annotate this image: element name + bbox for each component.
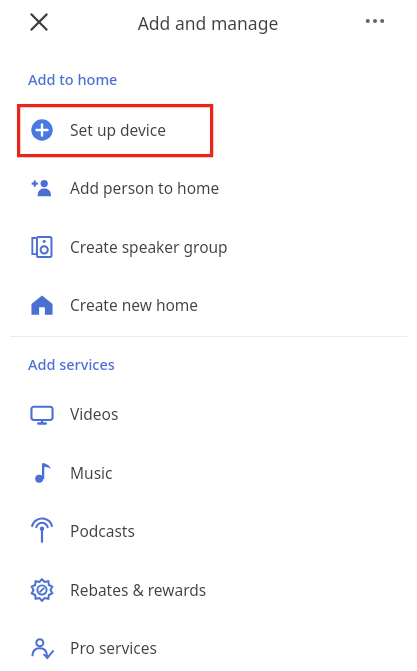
staticText: Music (70, 462, 113, 483)
staticText: Create speaker group (70, 236, 228, 257)
button[interactable]: Add person to home (0, 159, 417, 217)
staticText: Add services (28, 354, 115, 374)
staticText: Add to home (28, 69, 118, 89)
button[interactable]: Pro services (0, 619, 417, 671)
button[interactable]: More options (357, 3, 393, 39)
button[interactable]: Music (0, 444, 417, 502)
button[interactable]: Create new home (0, 276, 417, 334)
staticText: Podcasts (70, 520, 135, 541)
button[interactable]: Podcasts (0, 502, 417, 560)
staticText: Pro services (70, 637, 157, 658)
staticText: Rebates & rewards (70, 579, 207, 600)
staticText: Set up device (70, 119, 167, 140)
button[interactable]: Videos (0, 385, 417, 443)
button[interactable]: Rebates & rewards (0, 561, 417, 619)
button[interactable]: Set up device (0, 101, 417, 159)
button[interactable]: Close (20, 3, 58, 41)
staticText: Add and manage (108, 11, 308, 35)
staticText: Videos (70, 403, 119, 424)
staticText: Add person to home (70, 177, 220, 198)
button[interactable]: Create speaker group (0, 218, 417, 276)
staticText: Create new home (70, 294, 199, 315)
